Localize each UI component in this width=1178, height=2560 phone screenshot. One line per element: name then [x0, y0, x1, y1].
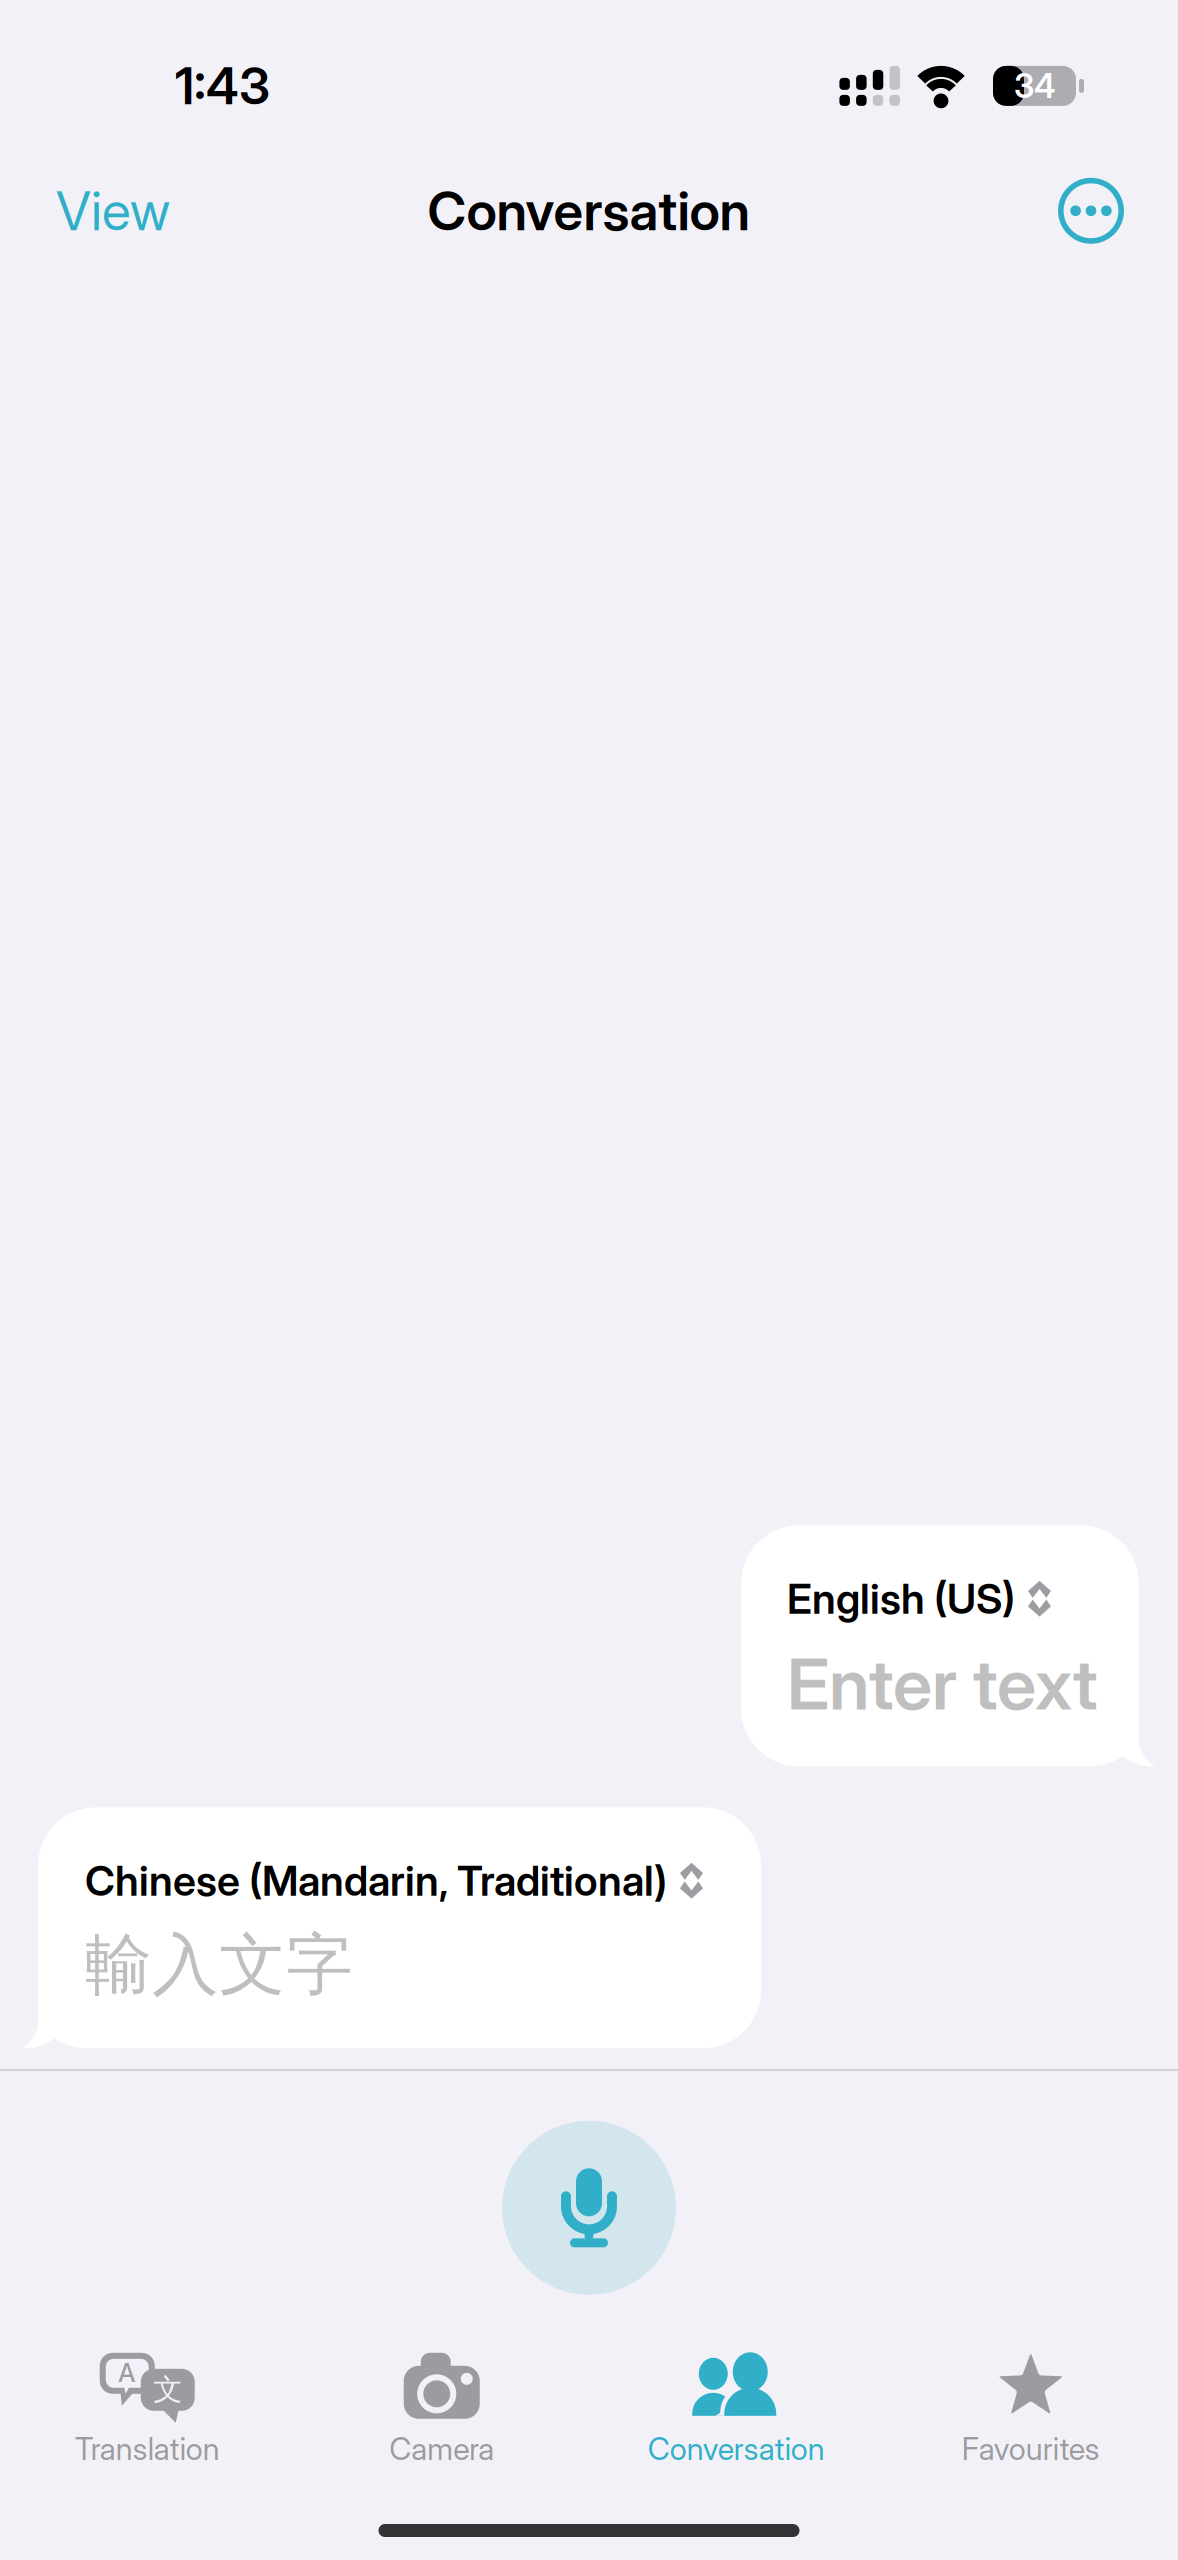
staticText: A — [118, 2358, 135, 2388]
staticText: Translation — [75, 2431, 220, 2467]
button[interactable]: Start recording — [502, 2121, 676, 2295]
staticText: Chinese (Mandarin, Traditional) — [85, 1856, 667, 1905]
staticText: Enter text — [787, 1642, 1098, 1725]
button[interactable]: More options — [1044, 167, 1138, 255]
button[interactable]: Conversation — [589, 2353, 883, 2467]
staticText: Favourites — [962, 2431, 1100, 2467]
staticText: 34 — [1014, 66, 1055, 105]
staticText: Camera — [389, 2431, 494, 2467]
staticText: Conversation — [648, 2431, 825, 2467]
button[interactable]: Favourites — [883, 2353, 1178, 2467]
staticText: 1:43 — [175, 56, 270, 116]
button[interactable]: View — [40, 166, 186, 255]
button[interactable]: A — [0, 2353, 294, 2467]
staticText: 輸入文字 — [85, 1924, 353, 2006]
button[interactable]: Camera — [294, 2353, 589, 2467]
staticText: Conversation — [427, 179, 750, 242]
staticText: 文 — [153, 2372, 182, 2408]
staticText: View — [56, 179, 170, 242]
staticText: English (US) — [787, 1574, 1015, 1623]
